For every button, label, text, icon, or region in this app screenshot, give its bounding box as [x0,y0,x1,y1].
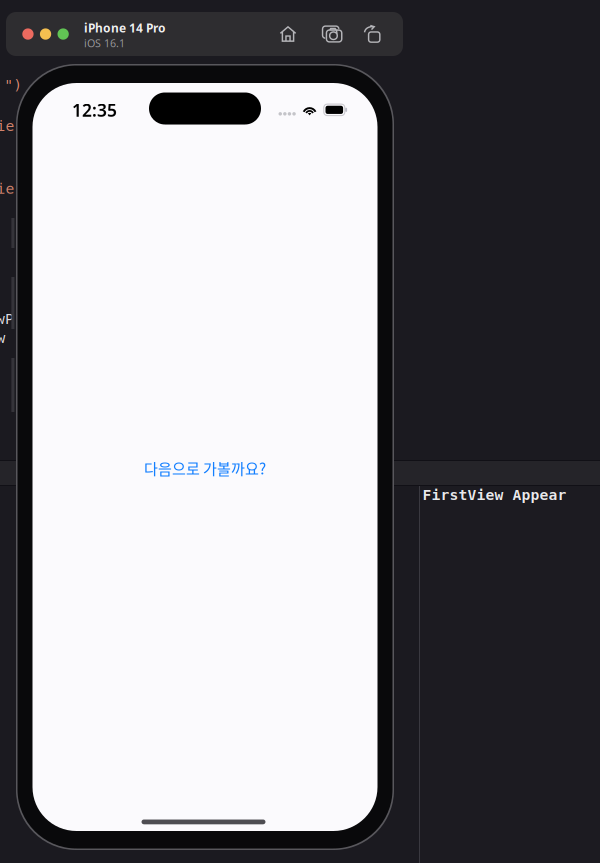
staticText: ie [0,117,14,135]
staticText: 12:35 [72,98,117,121]
staticText: wP [0,310,14,328]
staticText: w [0,329,5,347]
staticText: ie [0,180,14,197]
staticText: iPhone 14 Pro [84,20,166,36]
staticText: iOS 16.1 [84,36,125,50]
staticText: 다음으로 가볼까요? [144,457,266,479]
staticText: FirstView Appear [422,486,566,504]
button[interactable]: 다음으로 가볼까요? [32,453,377,483]
button[interactable]: Home [273,19,303,49]
staticText: ") [4,76,22,94]
button[interactable]: Rotate device [357,19,387,49]
button[interactable]: Screenshot [317,19,347,49]
